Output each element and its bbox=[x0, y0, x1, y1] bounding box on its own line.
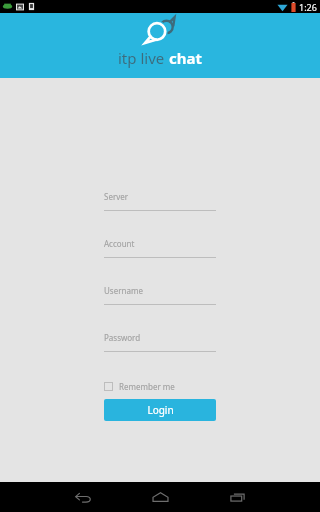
button[interactable]: Username bbox=[104, 280, 216, 327]
staticText: chat bbox=[169, 48, 202, 68]
button[interactable]: Back bbox=[60, 482, 106, 512]
staticText: Username bbox=[104, 285, 143, 296]
button[interactable]: Login bbox=[104, 399, 216, 421]
staticText: Account bbox=[104, 238, 135, 249]
button[interactable]: Remember me bbox=[104, 381, 175, 392]
button[interactable]: Home bbox=[137, 482, 183, 512]
button[interactable]: Server bbox=[104, 186, 216, 233]
staticText: Server bbox=[104, 191, 129, 202]
staticText: Remember me bbox=[119, 381, 175, 392]
button[interactable]: Recent apps bbox=[214, 482, 260, 512]
staticText: 1:26 bbox=[299, 1, 317, 13]
button[interactable]: Password bbox=[104, 327, 216, 374]
staticText: itp live bbox=[118, 48, 169, 68]
staticText: Password bbox=[104, 332, 141, 343]
button[interactable]: Account bbox=[104, 233, 216, 280]
staticText: Login bbox=[147, 403, 174, 417]
